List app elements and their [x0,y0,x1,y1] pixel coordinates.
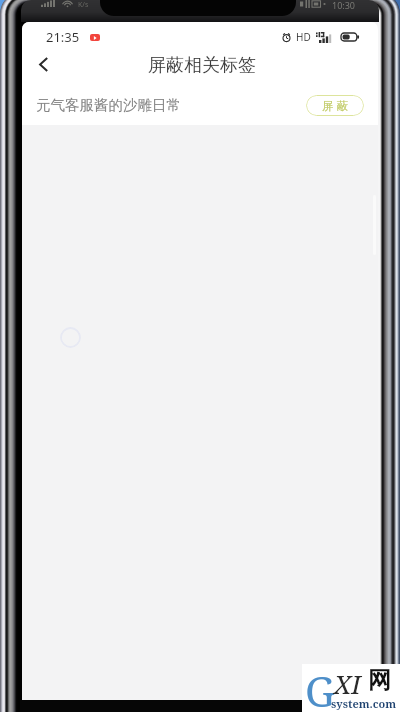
button[interactable]: 屏 蔽 [306,95,364,116]
staticText: 21:35 [46,28,80,46]
staticText: 元气客服酱的沙雕日常 [36,96,181,114]
staticText: 网 [368,666,391,695]
staticText: XI [334,666,361,701]
button[interactable]: 元气客服酱的沙雕日常 [22,83,378,127]
button[interactable]: Back [28,49,58,79]
staticText: HD [296,30,311,44]
staticText: G [305,662,335,710]
staticText: 屏蔽相关标签 [148,54,256,77]
staticText: system.com [331,696,397,711]
staticText: 屏 蔽 [322,98,348,114]
staticText: K/s [78,0,89,10]
staticText: 10:30 [332,0,356,11]
